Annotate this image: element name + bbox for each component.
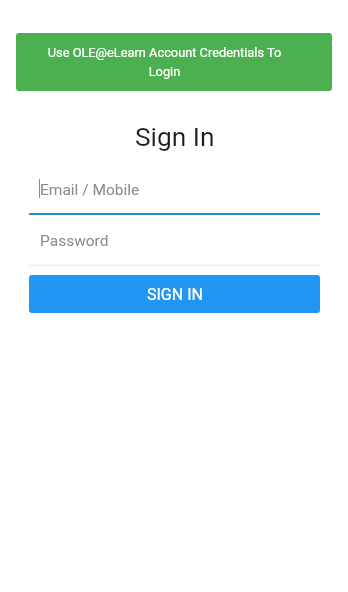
staticText: Password	[40, 232, 109, 250]
button[interactable]: Use OLE@eLearn Account Credentials To Lo…	[16, 33, 332, 91]
staticText: Use OLE@eLearn Account Credentials To Lo…	[32, 45, 297, 79]
staticText: Email / Mobile	[40, 181, 140, 199]
staticText: SIGN IN	[147, 285, 203, 304]
button[interactable]: Email or Mobile input field	[29, 178, 320, 214]
button[interactable]: SIGN IN	[29, 275, 320, 313]
staticText: Sign In	[135, 122, 215, 153]
button[interactable]: Password input field	[29, 229, 320, 263]
